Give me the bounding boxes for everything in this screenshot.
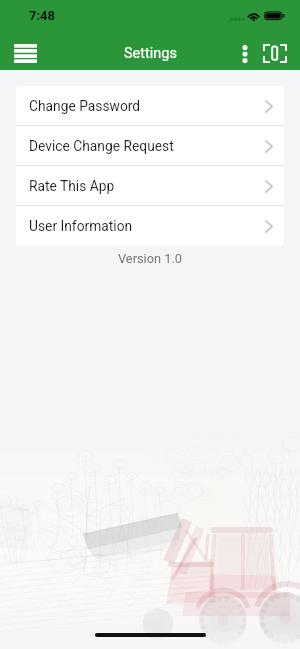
staticText: Rate This App [29,178,115,194]
button[interactable]: Open navigation menu [6,34,44,72]
button[interactable]: User Information [16,206,284,246]
button[interactable]: Device Change Request [16,126,284,166]
staticText: Device Change Request [29,138,174,154]
button[interactable]: Scan device code [258,36,292,70]
button[interactable]: Change Password [16,86,284,126]
button[interactable]: More options [232,36,257,72]
staticText: Version 1.0 [0,251,300,266]
staticText: Change Password [29,98,141,114]
staticText: User Information [29,218,133,234]
button[interactable]: Rate This App [16,166,284,206]
staticText: 7:48 [29,8,56,23]
staticText: Settings [124,45,177,62]
